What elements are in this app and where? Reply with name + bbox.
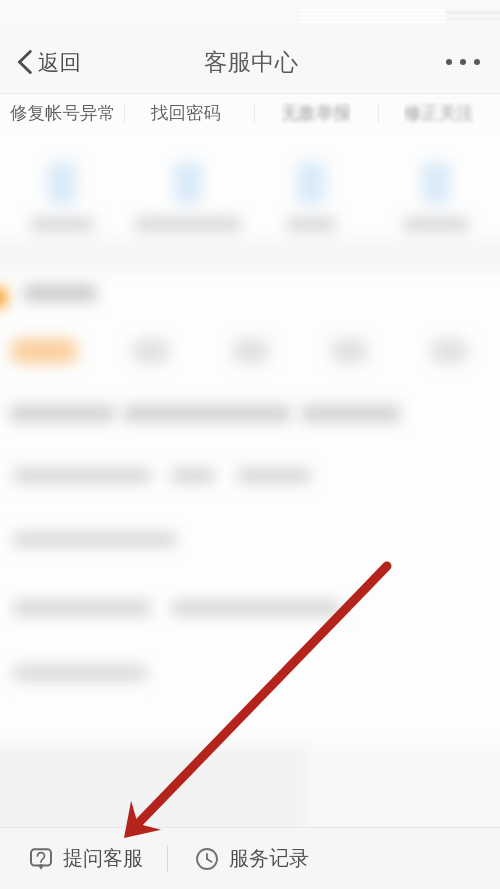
- button[interactable]: 修复帐号异常: [0, 93, 124, 132]
- button[interactable]: 提问客服: [30, 828, 143, 889]
- button[interactable]: 找回密码: [121, 93, 251, 132]
- button[interactable]: 返回: [14, 30, 81, 93]
- staticText: 找回密码: [151, 102, 221, 124]
- staticText: 提问客服: [63, 846, 143, 871]
- button[interactable]: More options: [446, 59, 480, 65]
- staticText: 返回: [38, 49, 81, 76]
- staticText: 修复帐号异常: [10, 102, 115, 124]
- staticText: 客服中心: [204, 47, 298, 77]
- button[interactable]: 无敌举报: [254, 93, 378, 132]
- staticText: 无敌举报: [281, 102, 351, 124]
- staticText: 修正关注: [404, 102, 474, 124]
- button[interactable]: 修正关注: [378, 93, 500, 132]
- button[interactable]: 服务记录: [196, 828, 309, 889]
- staticText: 服务记录: [229, 846, 309, 871]
